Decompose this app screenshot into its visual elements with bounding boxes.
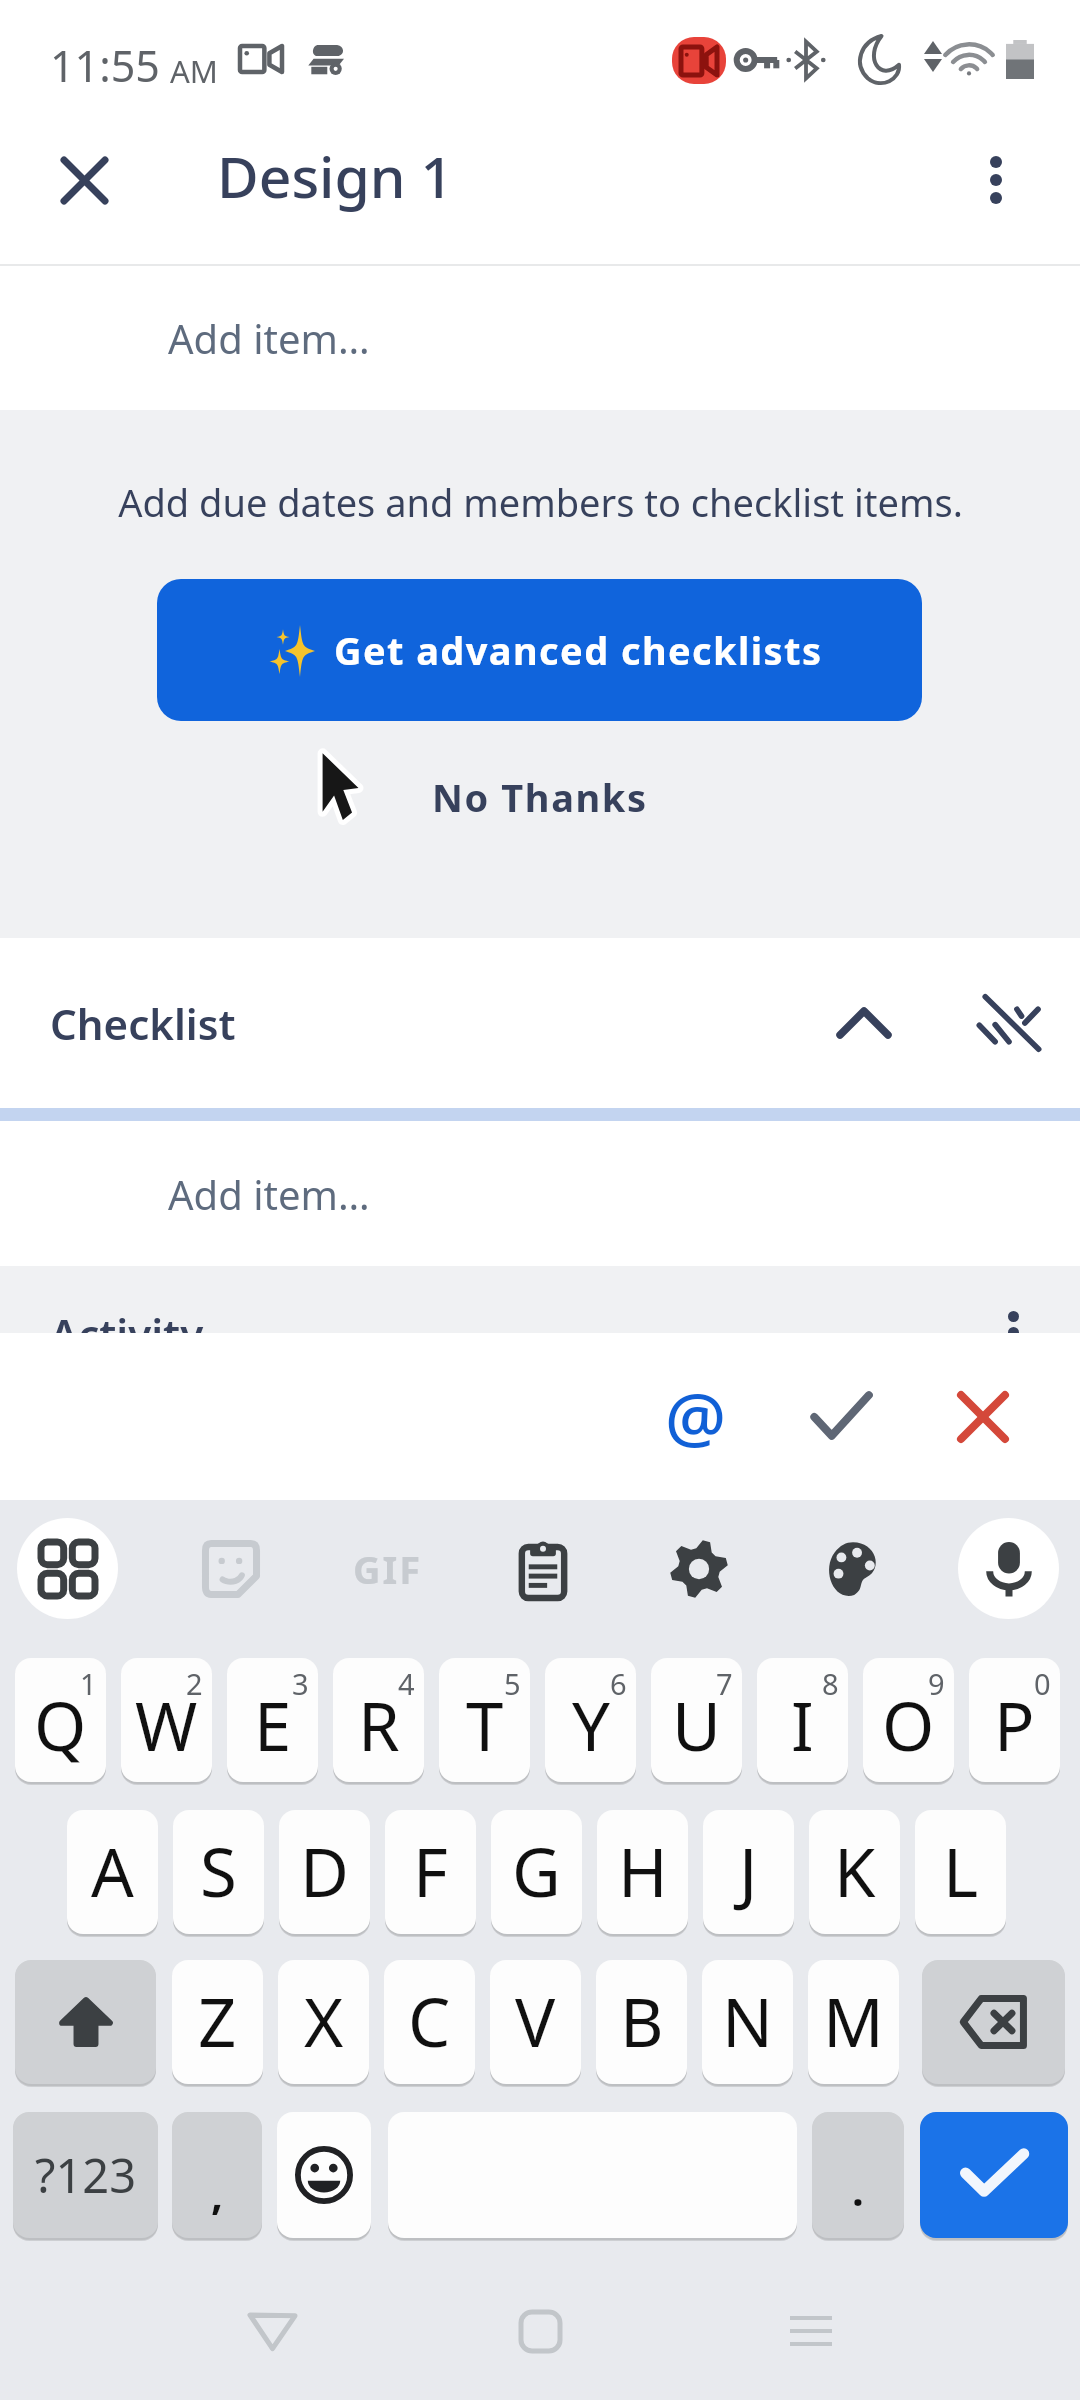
staticText: ?123 <box>35 2143 137 2207</box>
button[interactable]: Y <box>545 1658 636 1782</box>
staticText: No Thanks <box>432 771 648 823</box>
button[interactable]: I <box>757 1658 848 1782</box>
button[interactable]: . <box>812 2112 904 2238</box>
staticText: K <box>834 1825 876 1916</box>
button[interactable]: K <box>809 1810 900 1934</box>
button[interactable]: Hide checked items <box>954 968 1064 1078</box>
button[interactable]: GIF <box>337 1518 438 1619</box>
staticText: 8 <box>822 1664 839 1703</box>
button[interactable]: Enter <box>920 2112 1068 2238</box>
button[interactable]: U <box>651 1658 742 1782</box>
button[interactable]: Keyboard layouts <box>17 1518 118 1619</box>
button[interactable]: B <box>596 1960 687 2084</box>
button[interactable]: R <box>333 1658 424 1782</box>
staticText: A <box>91 1825 134 1916</box>
button[interactable]: E <box>227 1658 318 1782</box>
staticText: T <box>466 1679 504 1770</box>
button[interactable]: Shift <box>15 1960 156 2084</box>
staticText: 1 <box>80 1664 97 1703</box>
staticText: Y <box>572 1679 610 1770</box>
button[interactable]: A <box>67 1810 158 1934</box>
button[interactable]: Z <box>172 1960 263 2084</box>
button[interactable]: Back <box>222 2281 322 2381</box>
button[interactable]: Clipboard <box>492 1518 593 1619</box>
staticText: 5 <box>504 1664 521 1703</box>
staticText: Get advanced checklists <box>334 624 823 676</box>
button[interactable]: J <box>703 1810 794 1934</box>
button[interactable]: X <box>278 1960 369 2084</box>
staticText: X <box>304 1975 344 2066</box>
button[interactable]: Confirm <box>786 1362 896 1472</box>
staticText: . <box>852 2161 864 2218</box>
button[interactable]: C <box>384 1960 475 2084</box>
staticText: 4 <box>398 1664 415 1703</box>
staticText: E <box>254 1679 292 1770</box>
button[interactable]: Add item… <box>0 1121 1080 1266</box>
staticText: 9 <box>928 1664 945 1703</box>
button[interactable]: Recents <box>761 2281 861 2381</box>
button[interactable]: L <box>915 1810 1006 1934</box>
staticText: W <box>135 1679 198 1770</box>
staticText: I <box>791 1679 814 1770</box>
staticText: Q <box>34 1679 87 1770</box>
button[interactable]: Voice input <box>958 1518 1059 1619</box>
button[interactable]: D <box>279 1810 370 1934</box>
button[interactable]: Activity options <box>1008 1311 1048 1333</box>
staticText: 11:55 <box>50 36 160 95</box>
button[interactable]: V <box>490 1960 581 2084</box>
staticText: 3 <box>292 1664 309 1703</box>
button[interactable]: Q <box>15 1658 106 1782</box>
button[interactable]: Collapse <box>809 968 919 1078</box>
staticText: Add item… <box>168 1167 370 1221</box>
button[interactable]: T <box>439 1658 530 1782</box>
button[interactable]: Themes <box>802 1518 903 1619</box>
staticText: Design 1 <box>217 137 453 215</box>
button[interactable]: F <box>385 1810 476 1934</box>
button[interactable]: G <box>491 1810 582 1934</box>
button[interactable]: Backspace <box>922 1960 1065 2084</box>
staticText: G <box>512 1825 561 1916</box>
staticText: V <box>515 1975 556 2066</box>
button[interactable]: Settings <box>648 1518 749 1619</box>
staticText: B <box>620 1975 664 2066</box>
button[interactable]: Cancel <box>928 1362 1038 1472</box>
staticText: O <box>882 1679 935 1770</box>
button[interactable]: H <box>597 1810 688 1934</box>
button[interactable]: No Thanks <box>390 742 690 852</box>
staticText: 6 <box>610 1664 627 1703</box>
button[interactable]: ?123 <box>13 2112 158 2238</box>
staticText: N <box>722 1975 773 2066</box>
staticText: Activity <box>50 1305 204 1333</box>
staticText: S <box>200 1825 237 1916</box>
staticText: 7 <box>716 1664 733 1703</box>
staticText: Checklist <box>50 995 236 1052</box>
staticText: R <box>358 1679 400 1770</box>
staticText: @ <box>665 1369 727 1462</box>
button[interactable]: M <box>808 1960 899 2084</box>
staticText: , <box>211 2165 223 2222</box>
button[interactable]: Get advanced checklists <box>157 579 922 721</box>
button[interactable]: , <box>172 2112 262 2238</box>
button[interactable]: W <box>121 1658 212 1782</box>
button[interactable]: Home <box>490 2281 590 2381</box>
button[interactable]: P <box>969 1658 1060 1782</box>
button[interactable]: N <box>702 1960 793 2084</box>
staticText: H <box>618 1825 668 1916</box>
button[interactable]: More options <box>950 134 1042 226</box>
button[interactable]: Emoji <box>277 2112 371 2238</box>
staticText: 2 <box>186 1664 203 1703</box>
button[interactable]: S <box>173 1810 264 1934</box>
button[interactable]: Mention <box>641 1362 751 1472</box>
staticText: D <box>300 1825 349 1916</box>
button[interactable]: O <box>863 1658 954 1782</box>
staticText: Add item… <box>168 311 370 365</box>
button[interactable]: Stickers <box>180 1518 281 1619</box>
staticText: 0 <box>1034 1664 1051 1703</box>
button[interactable]: Close <box>38 134 130 226</box>
staticText: L <box>943 1825 979 1916</box>
button[interactable]: Add item… <box>0 266 1080 410</box>
staticText: P <box>994 1679 1035 1770</box>
staticText: GIF <box>353 1543 423 1595</box>
staticText: AM <box>170 50 218 92</box>
